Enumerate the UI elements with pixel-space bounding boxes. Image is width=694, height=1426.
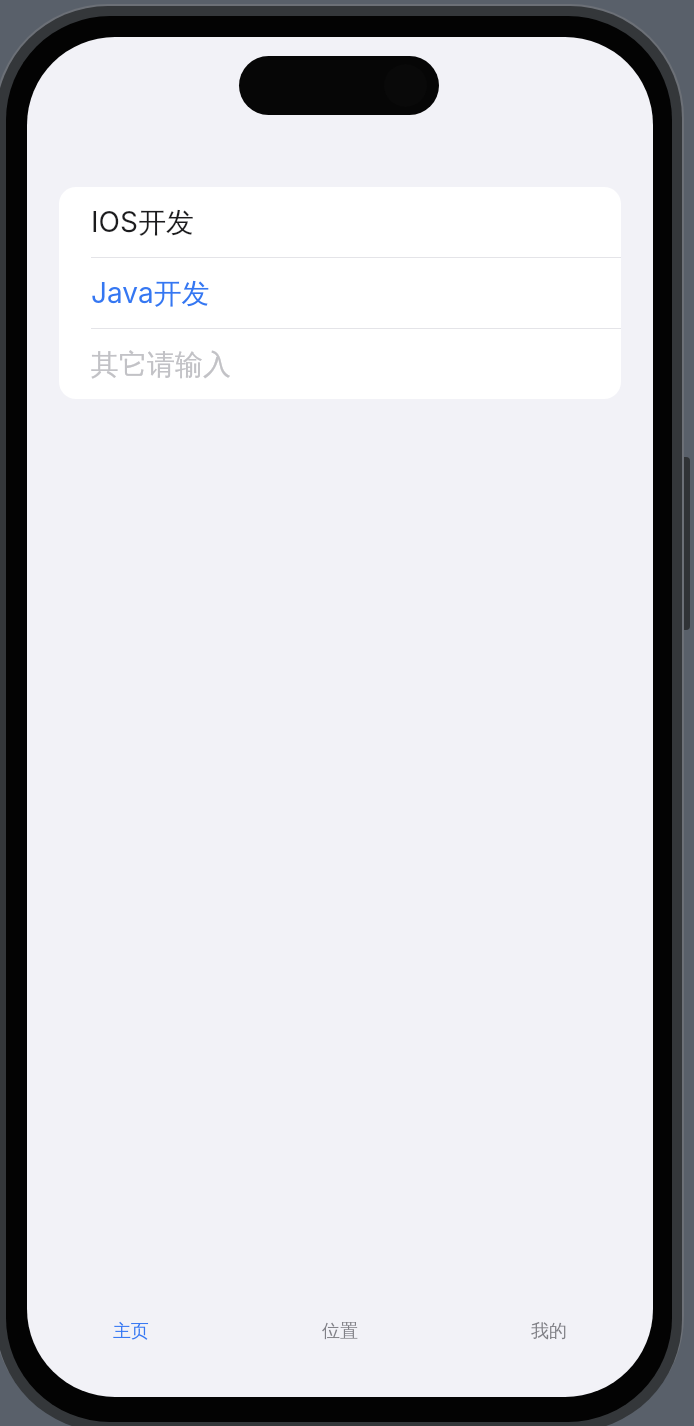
button[interactable]: 位置 [235, 1271, 444, 1391]
button[interactable]: 其它请输入 [59, 329, 621, 399]
button[interactable]: IOS开发 [59, 187, 621, 257]
staticText: 我的 [531, 1320, 567, 1343]
staticText: 位置 [322, 1320, 358, 1343]
button[interactable]: 主页 [27, 1271, 235, 1391]
staticText: IOS开发 [91, 205, 194, 240]
button[interactable]: Java开发 [59, 258, 621, 328]
staticText: 其它请输入 [91, 347, 231, 382]
staticText: Java开发 [91, 276, 210, 311]
staticText: 主页 [113, 1320, 149, 1343]
button[interactable]: 我的 [444, 1271, 653, 1391]
